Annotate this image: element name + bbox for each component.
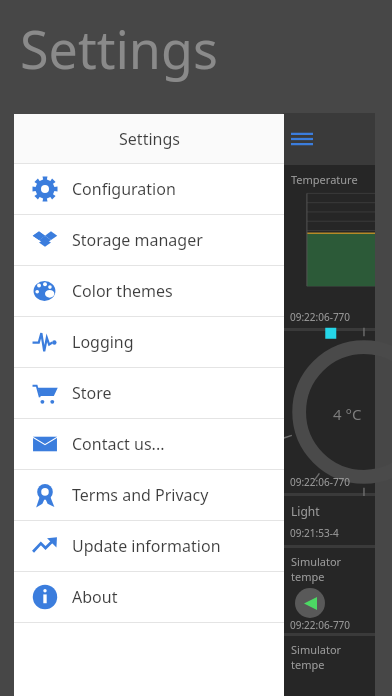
staticText: Configuration	[72, 178, 176, 200]
staticText: 09:22:06-770	[290, 618, 351, 629]
staticText: Light	[291, 503, 320, 519]
staticText: Storage manager	[72, 229, 203, 251]
button[interactable]: Color themes	[14, 266, 284, 317]
staticText: Settings	[20, 13, 218, 84]
staticText: 09:22:06-770	[290, 310, 351, 324]
staticText: About	[72, 586, 118, 608]
staticText: Simulator tempe	[291, 642, 375, 672]
staticText: Logging	[72, 331, 134, 353]
staticText: Terms and Privacy	[72, 484, 209, 506]
staticText: Update information	[72, 535, 221, 557]
button[interactable]: Open navigation menu	[283, 113, 375, 165]
staticText: 4 °C	[333, 404, 362, 424]
button[interactable]: Store	[14, 368, 284, 419]
button[interactable]: Play simulator	[295, 588, 325, 618]
button[interactable]: Configuration	[14, 164, 284, 215]
staticText: Simulator tempe	[291, 554, 375, 584]
staticText: Settings	[119, 128, 180, 150]
button[interactable]: Temperature	[283, 165, 375, 328]
button[interactable]: Simulator tempe	[283, 636, 375, 696]
button[interactable]: 4 °C	[283, 331, 375, 493]
button[interactable]: Logging	[14, 317, 284, 368]
button[interactable]: Update information	[14, 521, 284, 572]
staticText: 09:22:06-770	[290, 475, 351, 489]
button[interactable]: Simulator tempe	[283, 548, 375, 633]
button[interactable]: Contact us...	[14, 419, 284, 470]
staticText: Store	[72, 382, 112, 404]
button[interactable]: Light	[283, 496, 375, 545]
staticText: Contact us...	[72, 433, 165, 455]
staticText: Color themes	[72, 280, 173, 302]
button[interactable]: Storage manager	[14, 215, 284, 266]
staticText: 09:21:53-4	[290, 526, 339, 540]
button[interactable]: About	[14, 572, 284, 623]
button[interactable]: Terms and Privacy	[14, 470, 284, 521]
staticText: Temperature	[291, 172, 358, 187]
